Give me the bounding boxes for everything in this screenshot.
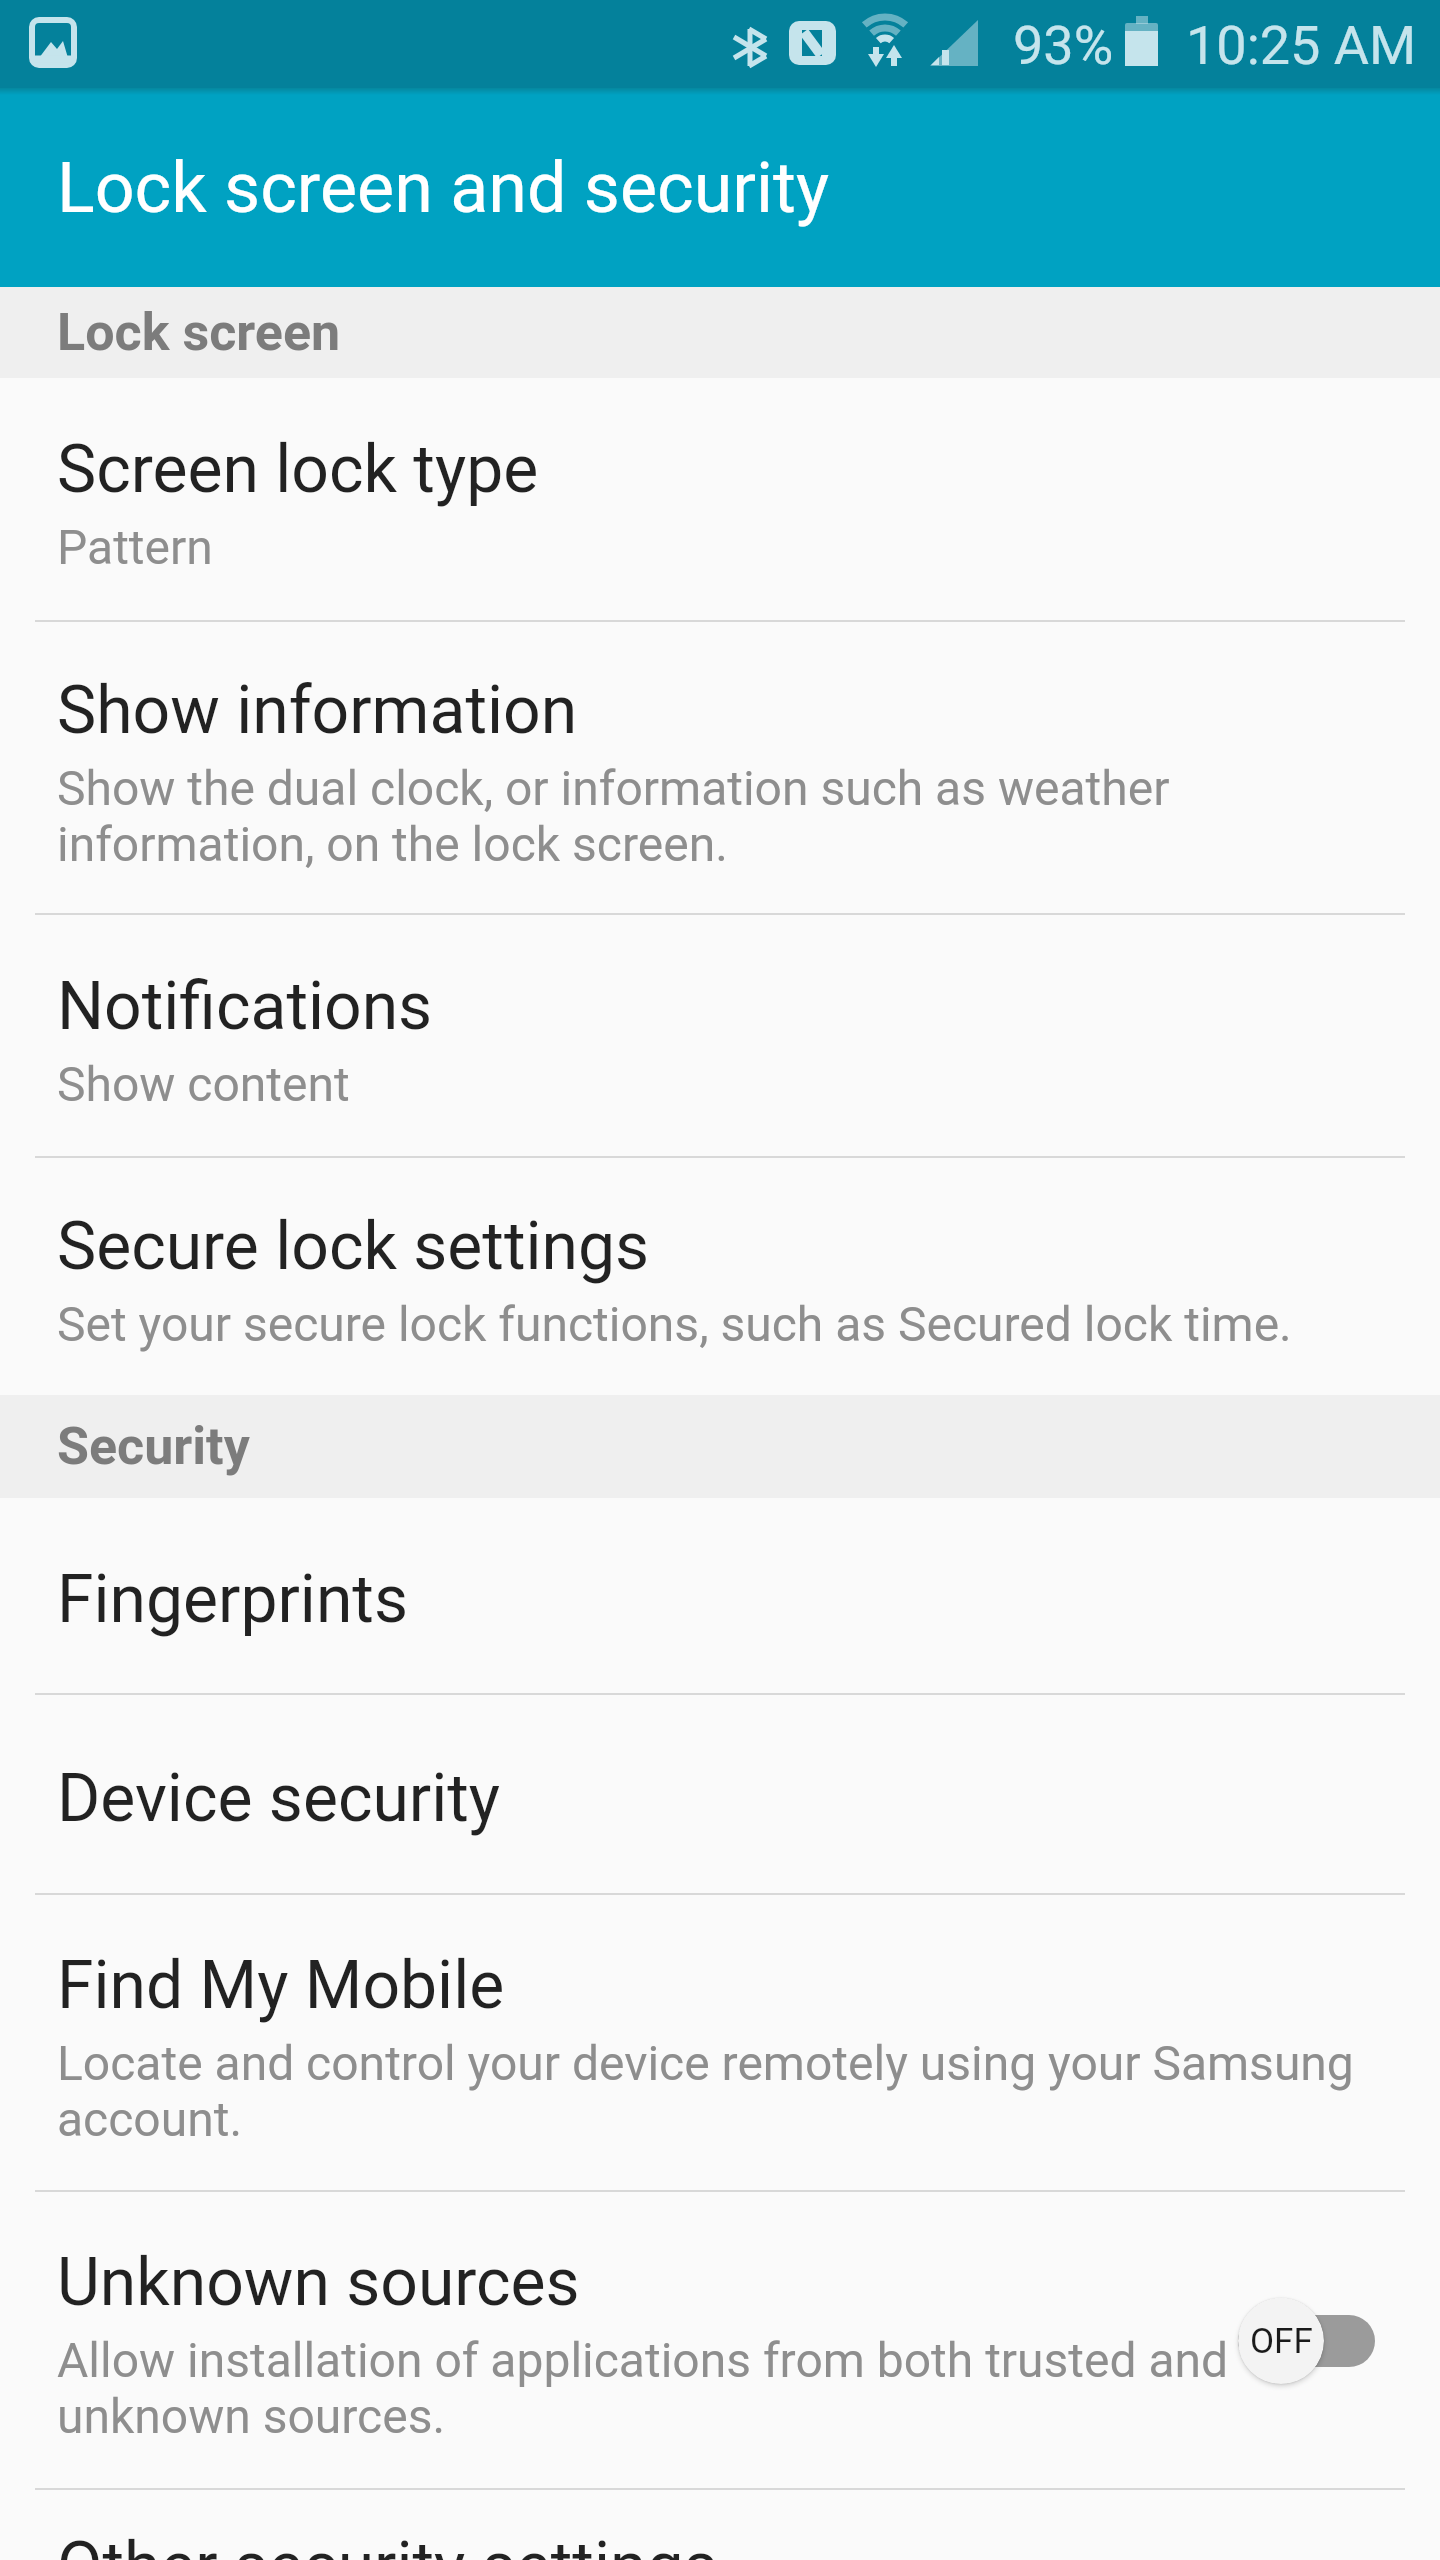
- button[interactable]: Fingerprints: [0, 1498, 1440, 1695]
- staticText: Pattern: [57, 519, 213, 575]
- staticText: Device security: [57, 1760, 501, 1837]
- staticText: Locate and control your device remotely …: [57, 2035, 1354, 2147]
- staticText: Fingerprints: [57, 1561, 408, 1638]
- staticText: Show information: [57, 672, 578, 749]
- staticText: 10:25 AM: [1186, 14, 1417, 77]
- button[interactable]: Other security settings: [0, 2490, 1440, 2560]
- staticText: 93%: [1013, 14, 1114, 77]
- staticText: Screen lock type: [57, 431, 539, 508]
- staticText: OFF: [1250, 2321, 1313, 2362]
- staticText: Set your secure lock functions, such as …: [57, 1296, 1292, 1352]
- staticText: Unknown sources: [57, 2244, 580, 2321]
- button[interactable]: OFF: [1238, 2293, 1375, 2389]
- button[interactable]: Show information: [0, 622, 1440, 915]
- staticText: Lock screen and security: [57, 147, 830, 229]
- staticText: Show the dual clock, or information such…: [57, 760, 1170, 872]
- button[interactable]: Unknown sources: [0, 2192, 1440, 2490]
- staticText: Allow installation of applications from …: [57, 2332, 1229, 2444]
- staticText: Security: [57, 1416, 250, 1477]
- staticText: Other security settings: [57, 2528, 718, 2560]
- staticText: Lock screen: [57, 302, 341, 363]
- button[interactable]: Notifications: [0, 915, 1440, 1158]
- staticText: Notifications: [57, 968, 433, 1045]
- button[interactable]: Screen lock type: [0, 378, 1440, 622]
- button[interactable]: Device security: [0, 1695, 1440, 1895]
- staticText: Find My Mobile: [57, 1947, 505, 2024]
- staticText: Secure lock settings: [57, 1208, 650, 1285]
- button[interactable]: Find My Mobile: [0, 1895, 1440, 2192]
- button[interactable]: Secure lock settings: [0, 1158, 1440, 1395]
- staticText: Show content: [57, 1056, 350, 1112]
